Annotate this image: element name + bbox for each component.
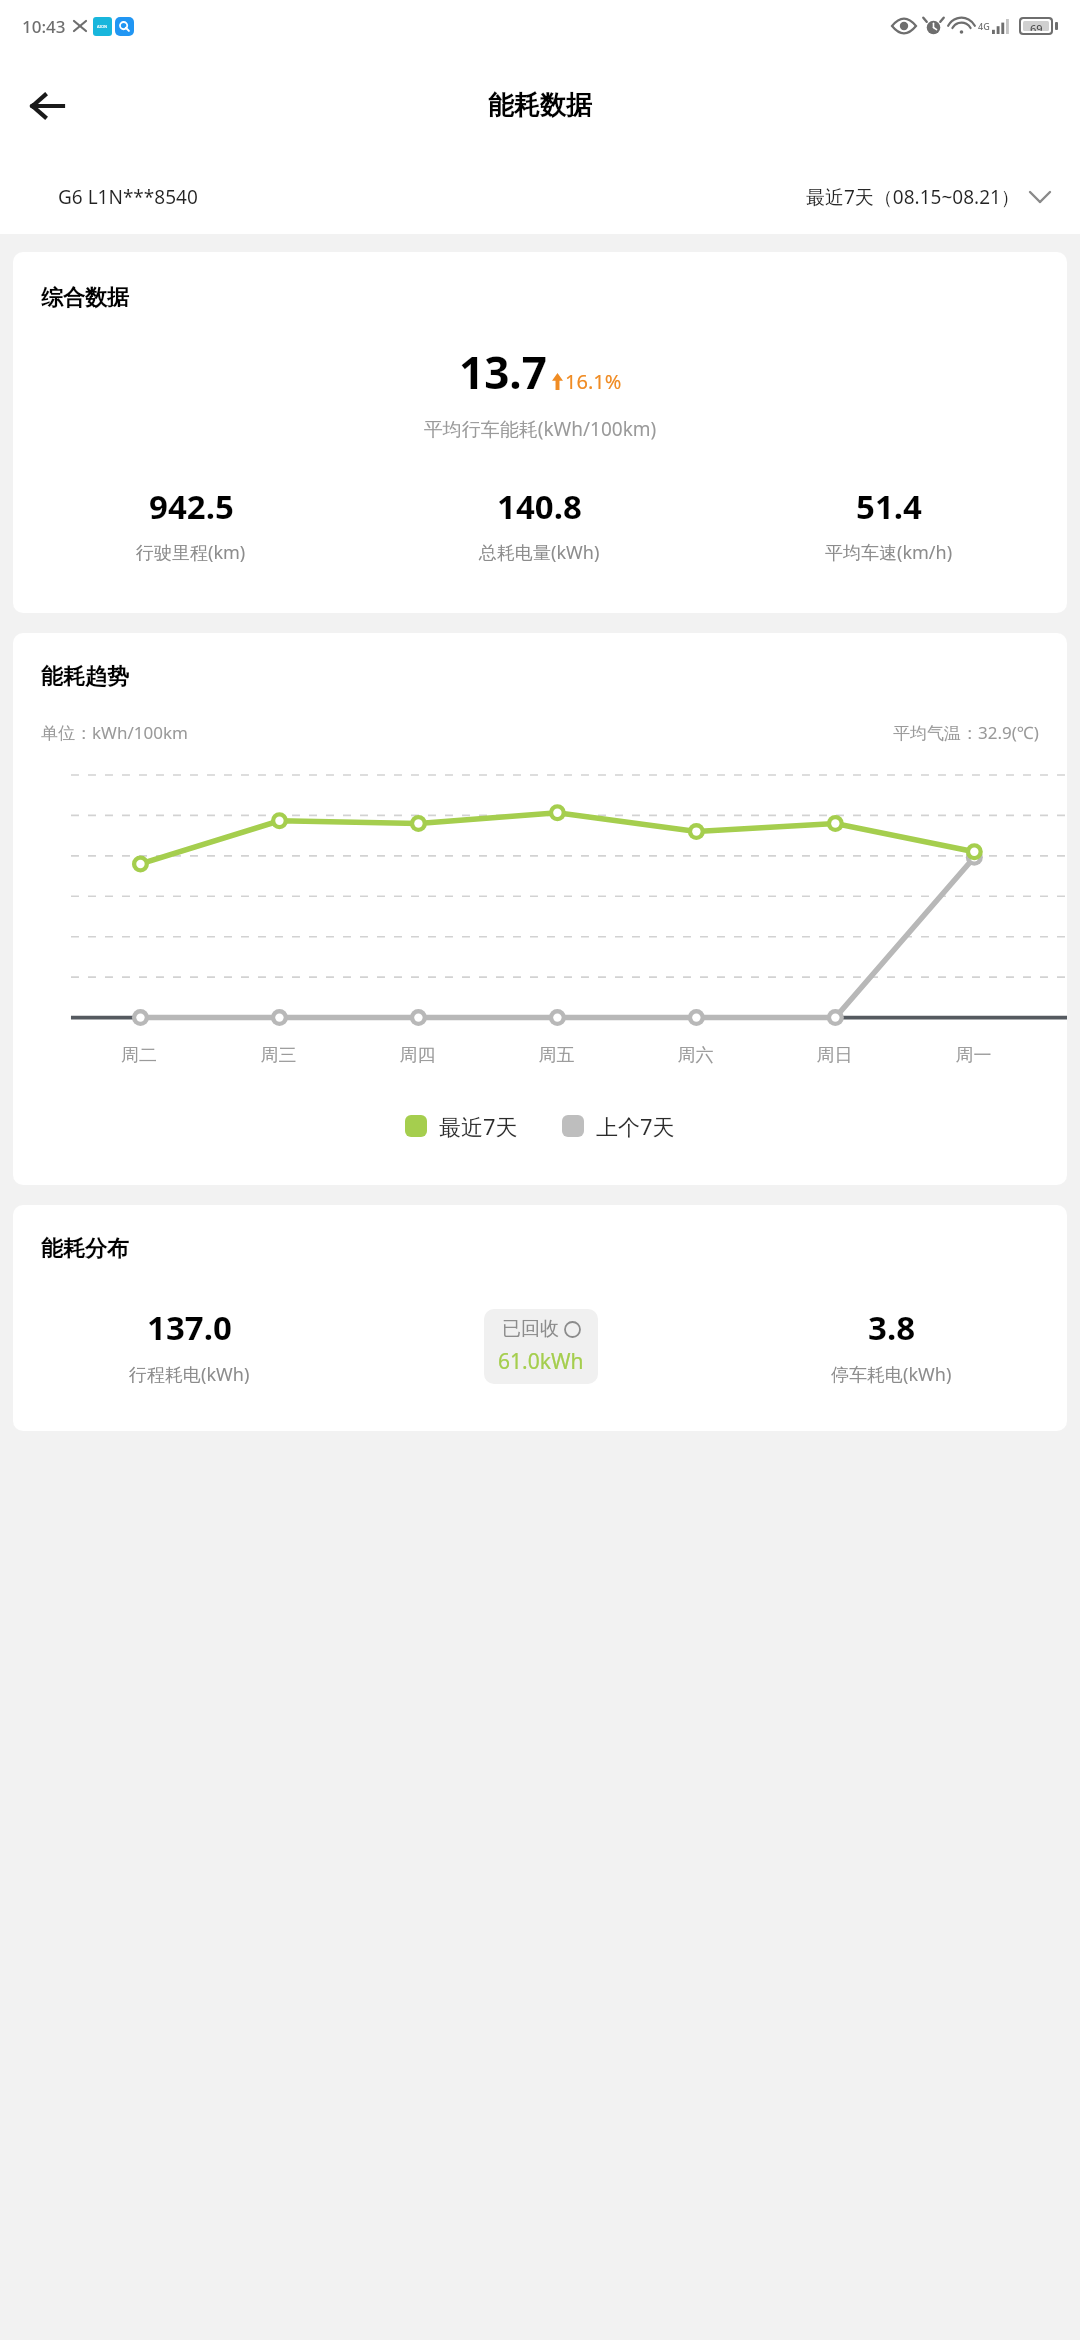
staticText: 3.8 — [868, 1305, 916, 1350]
staticText: 总耗电量(kWh) — [479, 540, 600, 565]
staticText: 周一 — [904, 1044, 1043, 1067]
button[interactable]: 上个7天 — [562, 1111, 675, 1141]
staticText: G6 L1N***8540 — [58, 184, 198, 210]
staticText: 周二 — [69, 1044, 209, 1067]
staticText: 平均车速(km/h) — [825, 540, 953, 565]
staticText: 4G — [978, 20, 990, 32]
staticText: 周三 — [209, 1044, 348, 1067]
staticText: 最近7天 — [439, 1111, 518, 1141]
staticText: 周日 — [765, 1044, 904, 1067]
staticText: 综合数据 — [41, 284, 129, 312]
button[interactable]: 已回收 — [498, 1317, 584, 1376]
button[interactable]: 最近7天 — [405, 1111, 518, 1141]
staticText: 上个7天 — [596, 1111, 675, 1141]
staticText: 942.5 — [149, 484, 234, 529]
staticText: 能耗趋势 — [41, 663, 129, 691]
staticText: 能耗数据 — [488, 89, 592, 122]
button[interactable]: Back — [14, 73, 80, 139]
staticText: 单位：kWh/100km — [41, 721, 188, 744]
staticText: 61.0kWh — [498, 1347, 584, 1376]
staticText: 停车耗电(kWh) — [831, 1362, 952, 1387]
staticText: 行驶里程(km) — [136, 540, 246, 565]
staticText: 平均气温：32.9(℃) — [893, 721, 1039, 744]
staticText: 周四 — [348, 1044, 487, 1067]
staticText: 周五 — [487, 1044, 626, 1067]
staticText: 69 — [1030, 21, 1043, 31]
staticText: 平均行车能耗(kWh/100km) — [13, 416, 1067, 442]
staticText: 周六 — [626, 1044, 765, 1067]
staticText: 能耗分布 — [41, 1235, 129, 1263]
staticText: AION — [97, 24, 108, 29]
staticText: 140.8 — [497, 484, 582, 529]
staticText: 行程耗电(kWh) — [129, 1362, 250, 1387]
staticText: 10:43 — [22, 15, 66, 38]
staticText: 已回收 — [502, 1317, 559, 1341]
staticText: 137.0 — [147, 1305, 232, 1350]
button[interactable]: 最近7天（08.15~08.21） — [798, 176, 1058, 218]
staticText: 16.1% — [565, 368, 622, 395]
staticText: 51.4 — [856, 484, 922, 529]
staticText: 最近7天（08.15~08.21） — [806, 184, 1020, 210]
staticText: 13.7 — [459, 342, 547, 402]
